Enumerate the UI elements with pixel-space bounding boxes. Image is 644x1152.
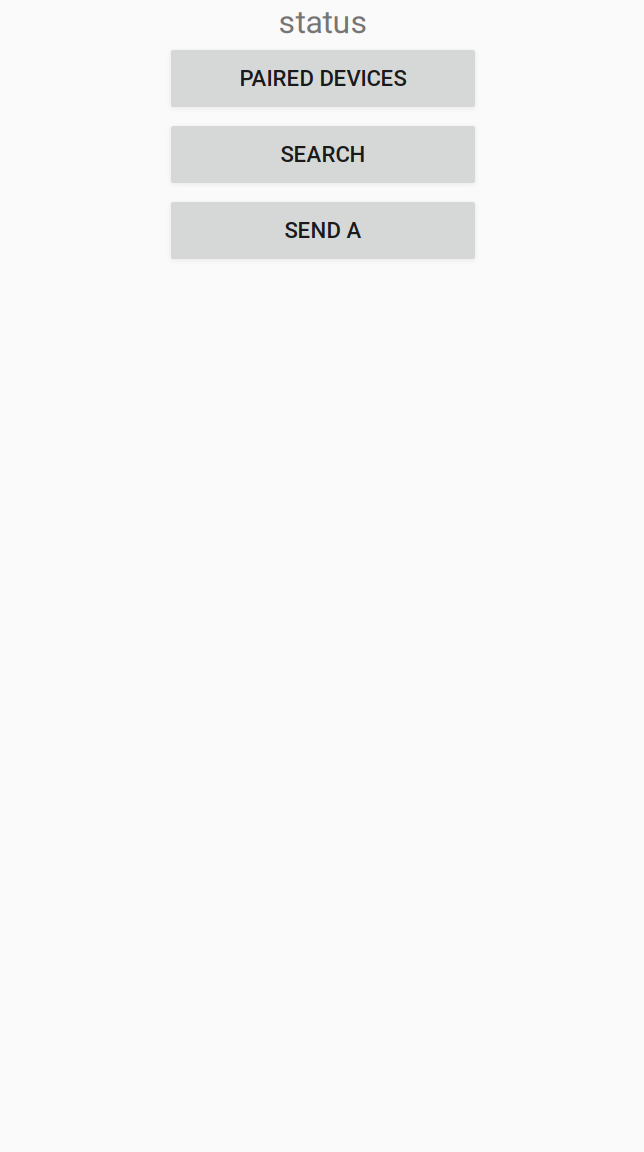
staticText: status: [278, 3, 367, 41]
button[interactable]: SEND A: [171, 202, 475, 259]
staticText: PAIRED DEVICES: [239, 65, 406, 91]
staticText: SEARCH: [280, 141, 365, 167]
staticText: SEND A: [284, 217, 361, 243]
button[interactable]: PAIRED DEVICES: [171, 50, 475, 107]
button[interactable]: SEARCH: [171, 126, 475, 183]
